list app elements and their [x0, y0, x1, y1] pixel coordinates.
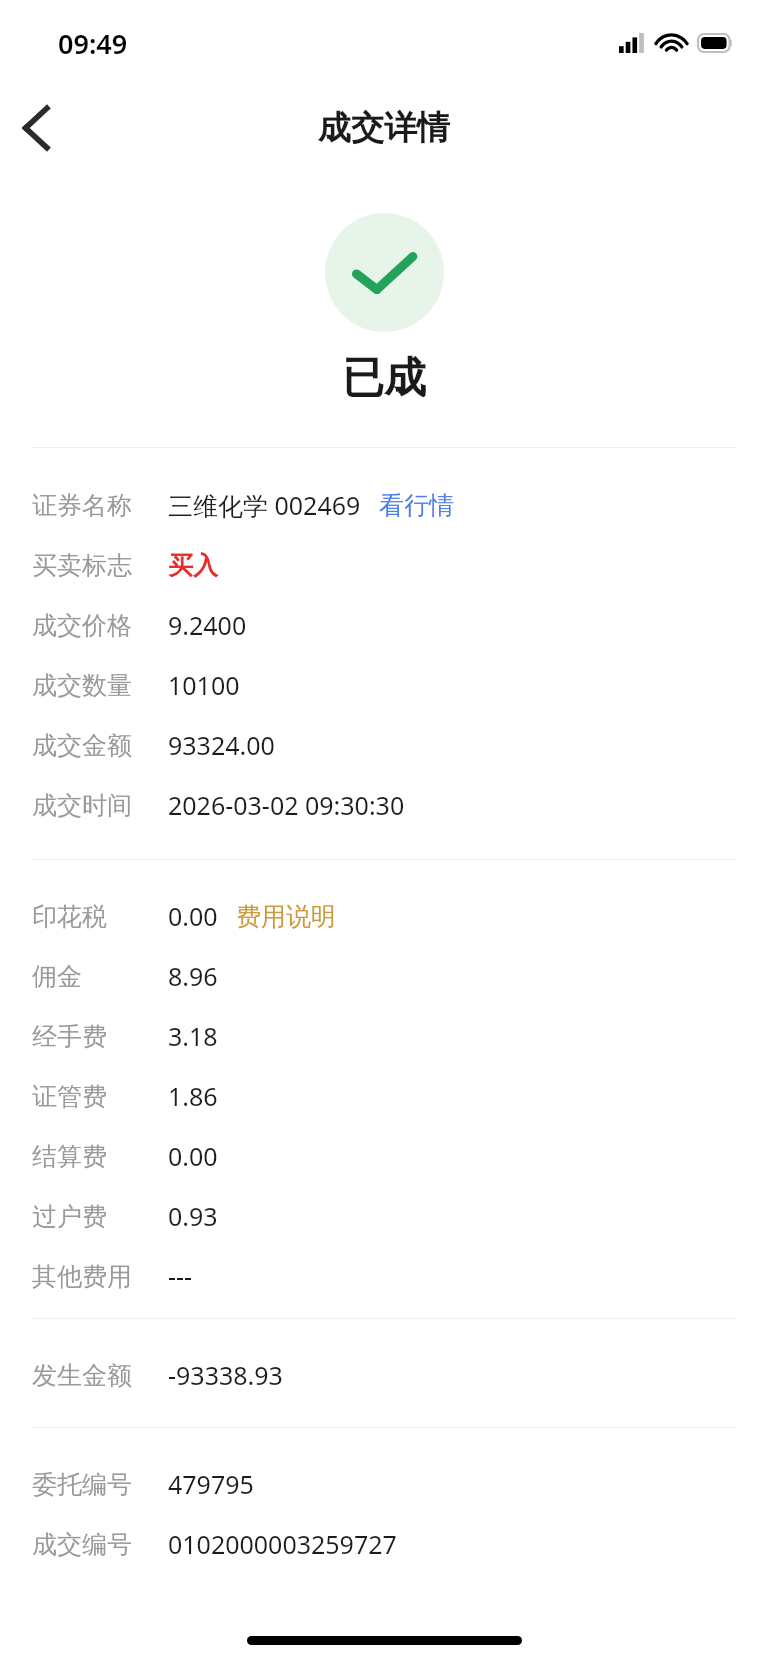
staticText: 93324.00 — [168, 728, 275, 762]
staticText: 买入 — [168, 550, 218, 581]
staticText: 经手费 — [32, 1021, 107, 1052]
staticText: 证券名称 — [32, 490, 132, 521]
staticText: 买卖标志 — [32, 550, 132, 581]
staticText: 1.86 — [168, 1079, 218, 1113]
staticText: 10100 — [168, 668, 240, 702]
staticText: 看行情 — [379, 490, 454, 521]
staticText: 已成 — [342, 352, 426, 405]
staticText: 2026-03-02 09:30:30 — [168, 788, 405, 822]
staticText: 0.93 — [168, 1199, 218, 1233]
staticText: 成交数量 — [32, 670, 132, 701]
staticText: 0102000003259727 — [168, 1527, 397, 1561]
staticText: 费用说明 — [236, 901, 336, 932]
staticText: 09:49 — [58, 25, 128, 62]
staticText: 8.96 — [168, 959, 218, 993]
staticText: 过户费 — [32, 1201, 107, 1232]
staticText: 委托编号 — [32, 1469, 132, 1500]
staticText: -93338.93 — [168, 1358, 283, 1392]
staticText: 结算费 — [32, 1141, 107, 1172]
staticText: 成交详情 — [318, 107, 450, 149]
staticText: 证管费 — [32, 1081, 107, 1112]
button[interactable]: 看行情 — [379, 490, 454, 521]
staticText: --- — [168, 1259, 193, 1293]
staticText: 成交编号 — [32, 1529, 132, 1560]
staticText: 佣金 — [32, 961, 82, 992]
staticText: 其他费用 — [32, 1261, 132, 1292]
staticText: 0.00 — [168, 1139, 218, 1173]
staticText: 479795 — [168, 1467, 254, 1501]
staticText: 成交价格 — [32, 610, 132, 641]
staticText: 成交时间 — [32, 790, 132, 821]
staticText: 发生金额 — [32, 1360, 132, 1391]
staticText: 印花税 — [32, 901, 107, 932]
staticText: 0.00 — [168, 899, 218, 933]
button[interactable]: Back — [0, 92, 72, 164]
staticText: 9.2400 — [168, 608, 247, 642]
staticText: 3.18 — [168, 1019, 218, 1053]
staticText: 三维化学 002469 — [168, 488, 361, 522]
button[interactable]: 费用说明 — [236, 901, 336, 932]
staticText: 成交金额 — [32, 730, 132, 761]
